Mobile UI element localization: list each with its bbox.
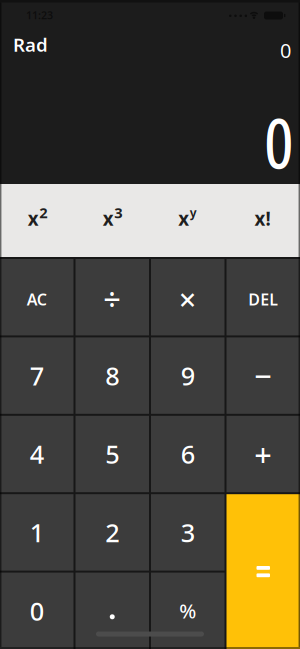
- staticText: 2: [39, 203, 47, 222]
- button[interactable]: AC: [0, 259, 73, 335]
- button[interactable]: x: [150, 184, 225, 257]
- button[interactable]: Equals: [226, 494, 300, 649]
- button[interactable]: 3: [151, 494, 224, 571]
- staticText: y: [190, 204, 197, 220]
- button[interactable]: x: [75, 184, 150, 257]
- staticText: x: [28, 206, 39, 231]
- staticText: 1: [30, 516, 44, 549]
- staticText: 3: [181, 516, 195, 549]
- staticText: 5: [105, 437, 119, 471]
- button[interactable]: 2: [75, 494, 149, 571]
- button[interactable]: x: [0, 184, 75, 257]
- staticText: ×: [179, 279, 197, 319]
- staticText: x!: [254, 206, 270, 231]
- button[interactable]: 8: [75, 337, 149, 414]
- staticText: x: [178, 206, 189, 231]
- staticText: −: [254, 355, 272, 396]
- button[interactable]: x!: [225, 184, 300, 257]
- button[interactable]: %: [151, 573, 224, 649]
- staticText: 0: [264, 95, 294, 189]
- staticText: 0: [30, 594, 44, 628]
- staticText: 4: [30, 437, 44, 471]
- button[interactable]: 0: [0, 573, 73, 649]
- staticText: DEL: [248, 289, 278, 310]
- button[interactable]: −: [226, 337, 300, 414]
- staticText: ÷: [103, 279, 121, 319]
- button[interactable]: ÷: [75, 259, 149, 335]
- staticText: 0: [280, 37, 291, 64]
- staticText: 11:23: [26, 8, 53, 22]
- button[interactable]: 7: [0, 337, 73, 414]
- button[interactable]: 5: [75, 416, 149, 492]
- staticText: 7: [30, 359, 44, 392]
- button[interactable]: +: [226, 416, 300, 492]
- button[interactable]: DEL: [226, 259, 300, 335]
- staticText: 6: [181, 437, 195, 471]
- button[interactable]: 6: [151, 416, 224, 492]
- button[interactable]: 9: [151, 337, 224, 414]
- button[interactable]: Decimal point: [75, 573, 149, 649]
- button[interactable]: 4: [0, 416, 73, 492]
- staticText: x: [103, 206, 114, 231]
- button[interactable]: 1: [0, 494, 73, 571]
- staticText: 3: [114, 203, 122, 222]
- staticText: 9: [181, 359, 195, 392]
- button[interactable]: ×: [151, 259, 224, 335]
- staticText: 2: [105, 516, 119, 549]
- staticText: +: [254, 434, 272, 474]
- staticText: %: [179, 597, 196, 624]
- staticText: 8: [105, 359, 119, 392]
- staticText: AC: [27, 289, 47, 310]
- staticText: Rad: [13, 32, 48, 57]
